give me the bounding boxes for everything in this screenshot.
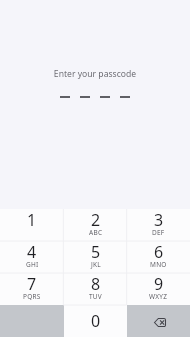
button[interactable]: Backspace xyxy=(127,305,190,337)
staticText: 2 xyxy=(91,209,101,231)
staticText: 3 xyxy=(154,209,164,231)
staticText: JKL xyxy=(91,260,101,269)
button[interactable]: 1 xyxy=(0,209,64,241)
staticText: 4 xyxy=(27,241,37,263)
staticText: 7 xyxy=(27,273,37,295)
button[interactable]: 7 xyxy=(0,273,64,305)
staticText: WXYZ xyxy=(149,292,168,301)
staticText: TUV xyxy=(89,292,103,301)
staticText: 0 xyxy=(91,310,101,332)
staticText: Enter your passcode xyxy=(0,68,190,80)
staticText: ABC xyxy=(89,228,103,237)
staticText: DEF xyxy=(152,228,165,237)
button[interactable]: 3 xyxy=(127,209,190,241)
staticText: 6 xyxy=(154,241,164,263)
staticText: 1 xyxy=(27,209,37,231)
staticText: 5 xyxy=(91,241,101,263)
button[interactable]: 4 xyxy=(0,241,64,273)
button[interactable]: 5 xyxy=(64,241,127,273)
staticText: MNO xyxy=(150,260,167,269)
button[interactable]: 0 xyxy=(64,305,127,337)
button[interactable]: 8 xyxy=(64,273,127,305)
button[interactable]: 9 xyxy=(127,273,190,305)
button[interactable]: 6 xyxy=(127,241,190,273)
staticText: GHI xyxy=(26,260,39,269)
button[interactable]: 2 xyxy=(64,209,127,241)
staticText: 9 xyxy=(154,273,164,295)
staticText: 8 xyxy=(91,273,101,295)
staticText: PQRS xyxy=(23,292,41,301)
